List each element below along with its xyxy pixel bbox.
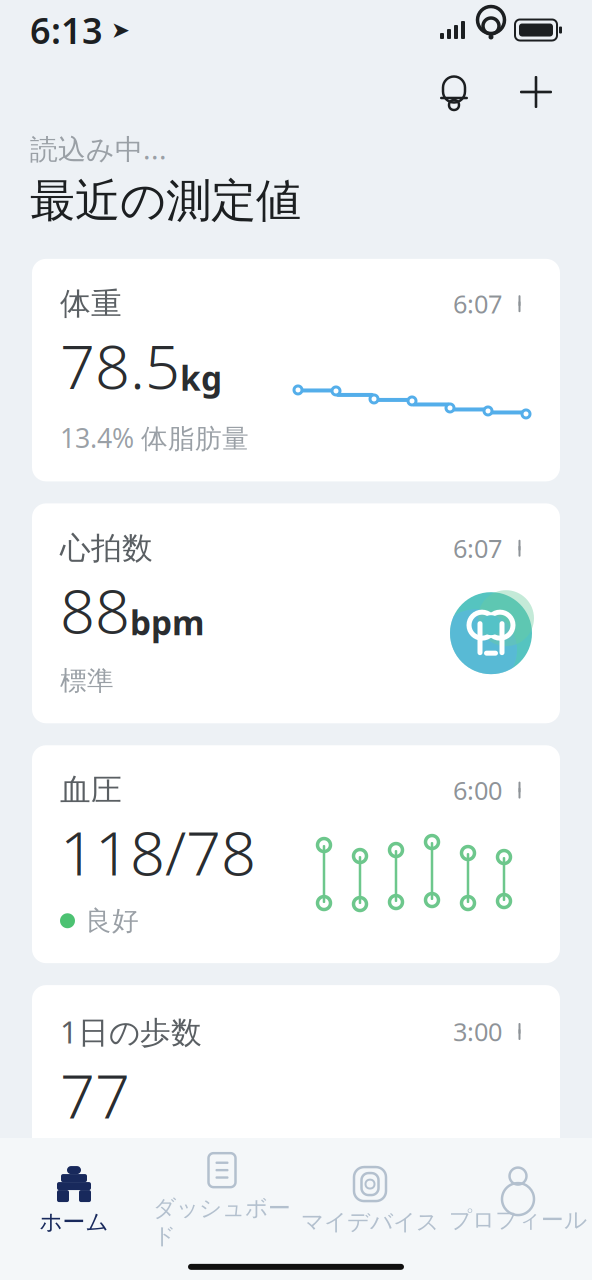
staticText: 118/78 bbox=[60, 811, 256, 892]
button[interactable]: 通知 bbox=[428, 66, 480, 118]
staticText: kg bbox=[180, 356, 222, 400]
button[interactable]: 血圧 bbox=[32, 745, 560, 963]
staticText: 3:00 bbox=[453, 1015, 502, 1048]
staticText: 6:13 bbox=[30, 6, 103, 54]
staticText: 標準 bbox=[60, 664, 114, 697]
staticText: 1日の歩数 bbox=[60, 1011, 202, 1052]
button[interactable]: プロフィール bbox=[444, 1160, 592, 1240]
staticText: 6:00 bbox=[453, 773, 502, 807]
button[interactable]: 心拍数 bbox=[32, 503, 560, 723]
staticText: 0% 目標 bbox=[60, 1149, 158, 1185]
button[interactable]: ホーム bbox=[0, 1158, 148, 1242]
staticText: 平均心拍数 bbox=[60, 1259, 215, 1280]
staticText: マイデバイス bbox=[301, 1208, 439, 1236]
staticText: 6:07 bbox=[453, 287, 502, 320]
staticText: 心拍数 bbox=[60, 529, 153, 567]
staticText: ホーム bbox=[39, 1208, 108, 1236]
staticText: 77 bbox=[60, 1054, 130, 1135]
staticText: 78.5 bbox=[60, 324, 180, 406]
button[interactable]: 体重 bbox=[32, 259, 560, 481]
staticText: ➤ bbox=[103, 17, 130, 43]
staticText: 良好 bbox=[85, 904, 139, 937]
staticText: ダッシュボード bbox=[153, 1194, 291, 1250]
button[interactable]: 1日の歩数 bbox=[32, 985, 560, 1211]
button[interactable]: マイデバイス bbox=[296, 1158, 444, 1242]
button[interactable]: 平均心拍数 bbox=[32, 1233, 560, 1280]
staticText: 最近の測定値 bbox=[30, 173, 301, 229]
staticText: 血圧 bbox=[60, 771, 122, 809]
staticText: プロフィール bbox=[449, 1206, 587, 1234]
button[interactable]: ダッシュボード bbox=[148, 1144, 296, 1256]
staticText: 13.4% 体脂肪量 bbox=[60, 420, 249, 455]
staticText: 体重 bbox=[60, 285, 122, 323]
staticText: bpm bbox=[130, 600, 205, 644]
staticText: 88 bbox=[60, 569, 130, 650]
staticText: 読込み中... bbox=[30, 130, 167, 167]
staticText: 6:07 bbox=[453, 531, 502, 565]
button[interactable]: 追加 bbox=[510, 66, 562, 118]
